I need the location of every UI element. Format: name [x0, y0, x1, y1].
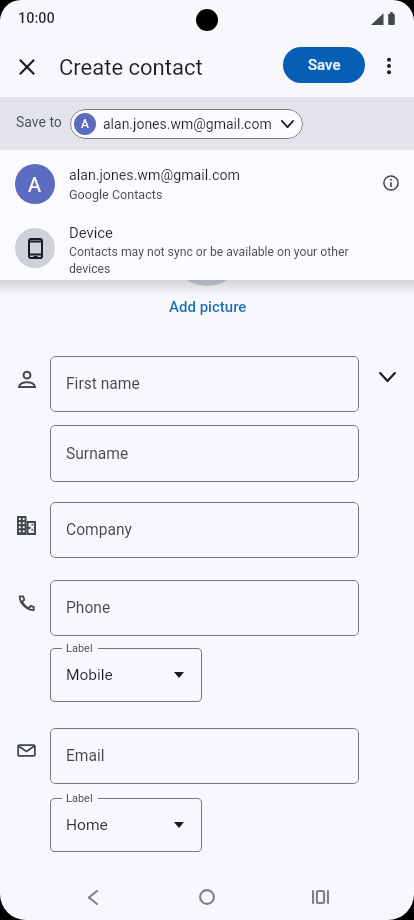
button[interactable]: Close — [7, 47, 47, 87]
staticText: Home — [66, 816, 108, 834]
button[interactable]: Expand name fields — [365, 355, 409, 399]
button[interactable]: Save — [283, 47, 365, 83]
staticText: Device — [69, 224, 113, 241]
staticText: A — [28, 173, 42, 196]
staticText: Phone — [66, 599, 111, 617]
staticText: Company — [66, 521, 132, 539]
staticText: Add picture — [169, 298, 247, 316]
button[interactable]: Email — [50, 728, 359, 784]
button[interactable]: Surname — [50, 425, 359, 482]
button[interactable]: First name — [50, 356, 359, 412]
button[interactable]: Recent apps — [296, 873, 344, 920]
staticText: Google Contacts — [69, 187, 163, 202]
staticText: Label — [66, 792, 93, 805]
button[interactable]: A — [70, 109, 303, 139]
staticText: Contacts may not sync or be available on… — [69, 245, 353, 276]
staticText: Save — [308, 56, 341, 74]
staticText: Mobile — [66, 666, 113, 684]
button[interactable]: Contact photo — [170, 212, 244, 286]
staticText: Save to — [16, 114, 62, 130]
staticText: 10:00 — [18, 10, 55, 27]
button[interactable]: Company — [50, 502, 359, 558]
button[interactable]: More options — [369, 46, 409, 86]
staticText: First name — [66, 375, 140, 393]
staticText: Email — [66, 747, 105, 765]
button[interactable]: Add picture — [162, 294, 254, 320]
button[interactable]: Label — [50, 648, 202, 702]
staticText: Create contact — [59, 55, 203, 81]
button[interactable]: Info — [371, 163, 411, 203]
staticText: Label — [66, 642, 93, 655]
button[interactable]: Label — [50, 798, 202, 852]
staticText: alan.jones.wm@gmail.com — [69, 167, 240, 184]
button[interactable]: Device — [0, 214, 414, 278]
staticText: alan.jones.wm@gmail.com — [103, 116, 272, 132]
staticText: A — [81, 117, 89, 131]
button[interactable]: Back — [69, 873, 117, 920]
button[interactable]: A — [0, 150, 414, 214]
staticText: Surname — [66, 445, 129, 463]
button[interactable]: Home — [183, 873, 231, 920]
button[interactable]: Phone — [50, 580, 359, 636]
